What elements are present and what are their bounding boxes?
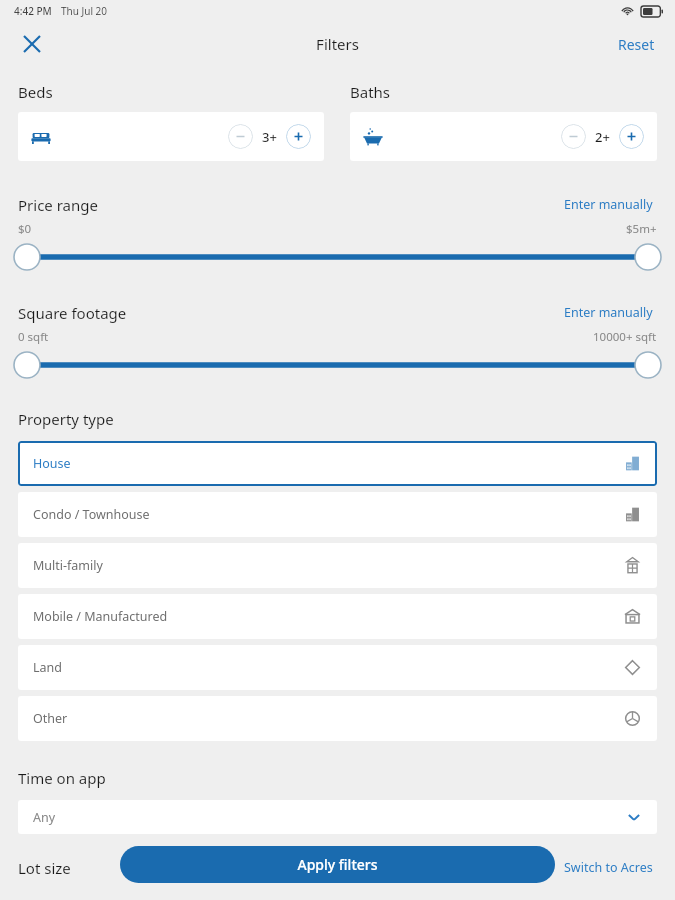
staticText: Price range xyxy=(18,195,98,215)
button[interactable]: Enter manually xyxy=(560,192,657,217)
button[interactable]: Reset xyxy=(612,29,661,60)
staticText: Filters xyxy=(316,34,359,54)
staticText: Beds xyxy=(18,82,53,102)
staticText: Multi-family xyxy=(33,557,103,574)
button[interactable]: House xyxy=(18,441,657,486)
button[interactable]: Switch to Acres xyxy=(560,856,657,879)
staticText: Land xyxy=(33,659,62,676)
staticText: Mobile / Manufactured xyxy=(33,608,168,625)
staticText: Other xyxy=(33,710,68,727)
staticText: 10000+ sqft xyxy=(593,329,657,345)
staticText: Condo / Townhouse xyxy=(33,506,150,523)
button[interactable]: Apply filters xyxy=(120,846,555,883)
staticText: Enter manually xyxy=(564,196,653,213)
button[interactable]: Range slider xyxy=(0,351,675,379)
staticText: Apply filters xyxy=(297,855,378,874)
staticText: Thu Jul 20 xyxy=(61,4,108,18)
button[interactable]: Range slider xyxy=(0,243,675,271)
button[interactable]: Condo / Townhouse xyxy=(18,492,657,537)
button[interactable]: Close xyxy=(12,24,52,64)
staticText: 3+ xyxy=(262,128,277,146)
button[interactable]: Decrease xyxy=(350,112,657,161)
button[interactable]: Increase xyxy=(619,124,644,149)
button[interactable]: Decrease xyxy=(228,124,253,149)
staticText: Switch to Acres xyxy=(564,859,653,876)
staticText: Lot size xyxy=(18,858,71,878)
staticText: $5m+ xyxy=(626,221,657,237)
staticText: $0 xyxy=(18,221,32,237)
staticText: Property type xyxy=(18,409,114,429)
button[interactable]: Land xyxy=(18,645,657,690)
staticText: Baths xyxy=(350,82,391,102)
button[interactable]: Other xyxy=(18,696,657,741)
staticText: Any xyxy=(33,809,56,826)
button[interactable]: Mobile / Manufactured xyxy=(18,594,657,639)
button[interactable]: Any xyxy=(18,800,657,834)
button[interactable]: Decrease xyxy=(561,124,586,149)
button[interactable]: Increase xyxy=(286,124,311,149)
staticText: Enter manually xyxy=(564,304,653,321)
button[interactable]: Decrease xyxy=(18,112,324,161)
staticText: 4:42 PM xyxy=(14,4,52,18)
staticText: Time on app xyxy=(18,768,106,788)
staticText: 0 sqft xyxy=(18,329,49,345)
button[interactable]: Enter manually xyxy=(560,300,657,325)
staticText: Square footage xyxy=(18,303,127,323)
staticText: Reset xyxy=(618,35,655,54)
staticText: 2+ xyxy=(595,128,610,146)
button[interactable]: Multi-family xyxy=(18,543,657,588)
staticText: House xyxy=(33,455,71,472)
